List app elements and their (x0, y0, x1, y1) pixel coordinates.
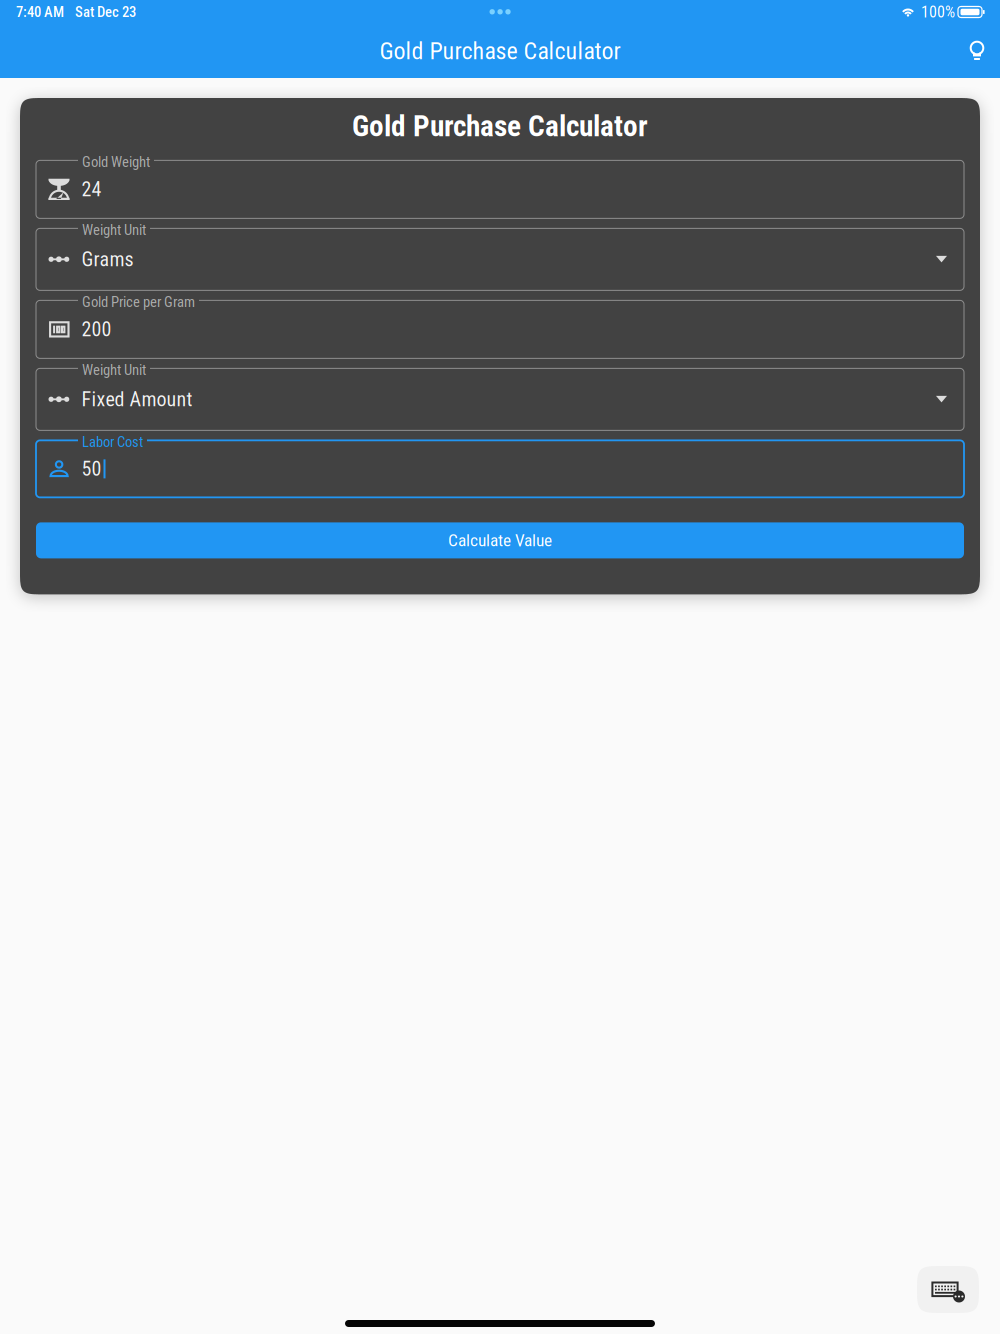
button[interactable]: Show keyboard (917, 1266, 979, 1313)
staticText: 200 (81, 318, 111, 341)
staticText: Weight Unit (82, 361, 146, 379)
button[interactable]: Tips (955, 29, 999, 73)
staticText: Grams (81, 248, 133, 271)
staticText: Gold Purchase Calculator (352, 109, 648, 143)
staticText: Gold Weight (82, 153, 150, 171)
staticText: 100% (921, 3, 955, 21)
staticText: Gold Purchase Calculator (379, 37, 620, 65)
staticText: 24 (81, 178, 101, 201)
staticText: 50 (81, 457, 101, 481)
button[interactable]: Calculate Value (36, 522, 964, 558)
staticText: 7:40 AM (16, 3, 64, 21)
staticText: Gold Price per Gram (82, 293, 195, 311)
staticText: Weight Unit (82, 221, 146, 239)
staticText: Calculate Value (448, 530, 552, 550)
staticText: Fixed Amount (81, 388, 192, 411)
staticText: Sat Dec 23 (75, 3, 136, 21)
staticText: Labor Cost (82, 433, 143, 451)
